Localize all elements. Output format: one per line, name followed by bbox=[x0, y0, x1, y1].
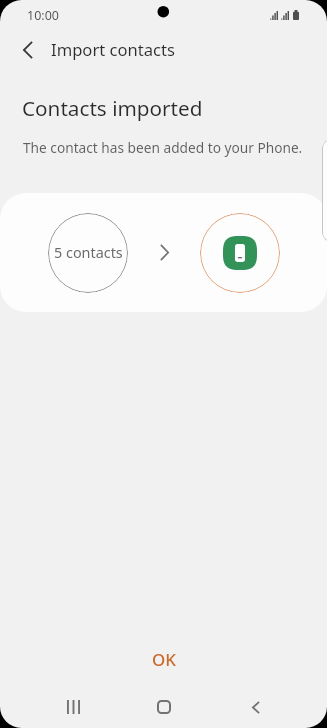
button[interactable]: Recent apps bbox=[40, 686, 106, 728]
staticText: 5 contacts bbox=[54, 243, 123, 263]
staticText: Contacts imported bbox=[22, 94, 203, 122]
staticText: Import contacts bbox=[51, 38, 176, 61]
staticText: The contact has been added to your Phone… bbox=[23, 138, 303, 157]
button[interactable]: Home bbox=[131, 686, 197, 728]
staticText: 10:00 bbox=[27, 7, 59, 24]
button[interactable]: Back bbox=[223, 686, 289, 728]
staticText: OK bbox=[152, 648, 176, 671]
button[interactable]: OK bbox=[0, 644, 327, 674]
button[interactable]: Back bbox=[9, 31, 47, 69]
